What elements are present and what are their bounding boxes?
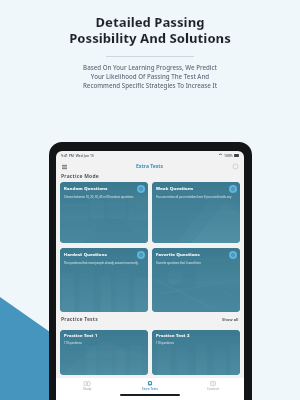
button[interactable]: Extra Tests xyxy=(118,378,181,394)
staticText: Practice Tests xyxy=(61,316,98,323)
staticText: Based On Your Learning Progress, We Pred… xyxy=(0,63,300,90)
button[interactable]: Menu xyxy=(60,162,69,171)
staticText: Practice Test 1 xyxy=(64,333,145,339)
button[interactable]: Random Questions xyxy=(60,182,148,243)
button[interactable]: Start Hardest Questions xyxy=(137,251,145,259)
staticText: 110 questions xyxy=(156,341,174,345)
button[interactable]: Hardest Questions xyxy=(60,248,148,312)
staticText: The questions that most people already a… xyxy=(64,261,138,265)
button[interactable]: Content xyxy=(181,378,244,394)
button[interactable]: Start Weak Questions xyxy=(229,185,237,193)
button[interactable]: Profile xyxy=(231,162,240,171)
staticText: Extra Tests xyxy=(136,163,164,170)
button[interactable]: Practice Test 2 xyxy=(152,330,240,375)
staticText: Hardest Questions xyxy=(64,252,137,258)
staticText: Extra Tests xyxy=(142,387,158,391)
staticText: Weak Questions xyxy=(156,186,229,192)
staticText: 9:41 PM Wed Jun 15 xyxy=(61,153,94,158)
staticText: You can review all your mistakes here if… xyxy=(156,195,232,199)
button[interactable]: Practice Test 1 xyxy=(60,330,148,375)
staticText: Practice Mode xyxy=(61,173,99,180)
staticText: 100% xyxy=(224,153,233,158)
staticText: Favorite questions that I saved here xyxy=(156,261,202,265)
staticText: 110 questions xyxy=(64,341,82,345)
staticText: Content xyxy=(207,387,219,391)
button[interactable]: Study xyxy=(56,378,118,394)
staticText: Favorite Questions xyxy=(156,252,229,258)
staticText: Practice Test 2 xyxy=(156,333,237,339)
button[interactable]: Favorite Questions xyxy=(152,248,240,312)
button[interactable]: Start Random Questions xyxy=(137,185,145,193)
button[interactable]: Weak Questions xyxy=(152,182,240,243)
button[interactable]: Start Favorite Questions xyxy=(229,251,237,259)
staticText: Choose between 10, 20, 30, 40 or 50 rand… xyxy=(64,195,134,199)
button[interactable]: Show all xyxy=(222,317,239,322)
staticText: Random Questions xyxy=(64,186,137,192)
staticText: Detailed Passing Possibility And Solutio… xyxy=(0,13,300,46)
staticText: Study xyxy=(83,387,92,391)
